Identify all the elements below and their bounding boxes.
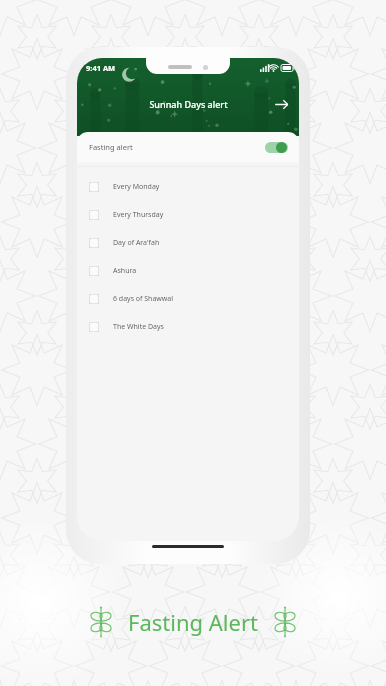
staticText: Every Thursday (113, 210, 164, 220)
staticText: 6 days of Shawwal (113, 294, 174, 304)
staticText: The White Days (113, 322, 164, 332)
staticText: Fasting alert (89, 142, 133, 152)
staticText: 9:41 AM (86, 63, 116, 73)
button[interactable]: Fasting alert (77, 132, 299, 162)
button[interactable]: Day of Ara'fah (77, 229, 299, 257)
button[interactable]: Every Thursday (77, 201, 299, 229)
staticText: Sunnah Days alert (149, 98, 228, 110)
button[interactable]: The White Days (77, 313, 299, 341)
button[interactable]: Every Monday (77, 173, 299, 201)
staticText: Every Monday (113, 182, 160, 192)
staticText: Fasting Alert (128, 607, 258, 637)
button[interactable]: Ashura (77, 257, 299, 285)
button[interactable]: 6 days of Shawwal (77, 285, 299, 313)
staticText: Day of Ara'fah (113, 238, 160, 248)
staticText: Ashura (113, 266, 137, 276)
button[interactable]: Next (271, 94, 291, 114)
